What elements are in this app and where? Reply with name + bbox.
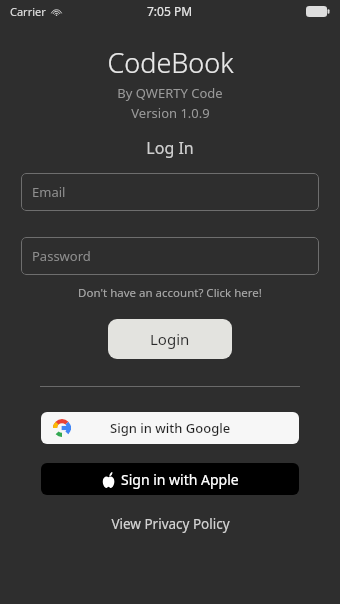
button[interactable]: Password <box>21 237 319 275</box>
other: Apple logo <box>102 472 115 488</box>
other: Google logo <box>53 419 71 437</box>
staticText: By QWERTY Code <box>117 84 223 102</box>
staticText: Log In <box>0 137 340 159</box>
staticText: Don't have an account? Click here! <box>78 285 262 301</box>
staticText: Version 1.0.9 <box>131 104 210 122</box>
button[interactable]: Login <box>108 319 232 359</box>
staticText: Email <box>32 183 66 201</box>
staticText: Carrier <box>10 4 46 19</box>
staticText: CodeBook <box>107 44 234 81</box>
button[interactable]: Google logo <box>41 412 299 444</box>
staticText: View Privacy Policy <box>111 515 230 533</box>
button[interactable]: Email <box>21 173 319 211</box>
staticText: Login <box>150 329 190 349</box>
staticText: Sign in with Google <box>110 419 231 437</box>
staticText: Password <box>32 247 91 265</box>
button[interactable]: View Privacy Policy <box>0 513 340 535</box>
button[interactable]: Apple logo <box>41 463 299 495</box>
staticText: Sign in with Apple <box>121 470 239 489</box>
button[interactable]: Don't have an account? Click here! <box>0 283 340 303</box>
staticText: 7:05 PM <box>147 3 193 19</box>
